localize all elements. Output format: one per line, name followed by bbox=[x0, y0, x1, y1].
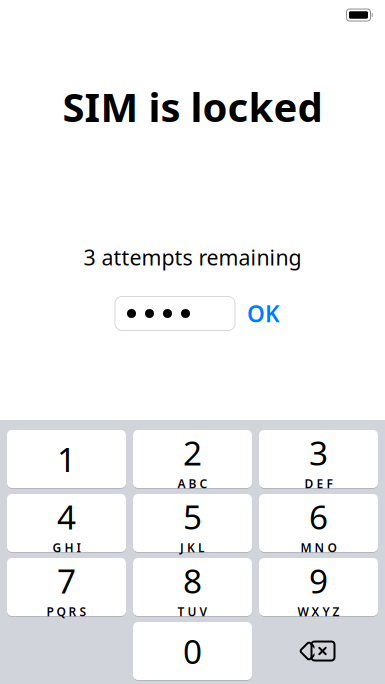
button[interactable]: 6 bbox=[259, 494, 378, 552]
staticText: D E F bbox=[304, 476, 332, 492]
staticText: 6 bbox=[309, 494, 328, 539]
staticText: 3 attempts remaining bbox=[83, 243, 301, 271]
staticText: 1 bbox=[57, 437, 76, 481]
button[interactable]: 5 bbox=[133, 494, 252, 552]
button[interactable]: 2 bbox=[133, 430, 252, 488]
button[interactable]: Delete bbox=[259, 622, 378, 680]
staticText: 2 bbox=[183, 430, 202, 475]
staticText: M N O bbox=[300, 540, 336, 556]
button[interactable]: OK bbox=[235, 292, 292, 334]
button[interactable]: 9 bbox=[259, 558, 378, 616]
staticText: 5 bbox=[183, 494, 202, 539]
staticText: W X Y Z bbox=[297, 604, 339, 620]
staticText: 0 bbox=[183, 629, 202, 673]
staticText: 4 bbox=[57, 494, 76, 539]
staticText: A B C bbox=[177, 476, 207, 492]
button[interactable]: 0 bbox=[133, 622, 252, 680]
button[interactable]: 8 bbox=[133, 558, 252, 616]
staticText: P Q R S bbox=[46, 604, 86, 620]
staticText: SIM is locked bbox=[62, 80, 322, 133]
staticText: 9 bbox=[309, 558, 328, 603]
staticText: G H I bbox=[52, 540, 80, 556]
staticText: 3 bbox=[309, 430, 328, 475]
staticText: T U V bbox=[177, 604, 207, 620]
staticText: 7 bbox=[57, 558, 76, 603]
staticText: J K L bbox=[180, 540, 205, 556]
staticText: 8 bbox=[183, 558, 202, 603]
staticText: OK bbox=[247, 298, 280, 328]
button[interactable]: 3 bbox=[259, 430, 378, 488]
button[interactable]: 1 bbox=[7, 430, 126, 488]
button[interactable]: 4 bbox=[7, 494, 126, 552]
button[interactable]: 7 bbox=[7, 558, 126, 616]
